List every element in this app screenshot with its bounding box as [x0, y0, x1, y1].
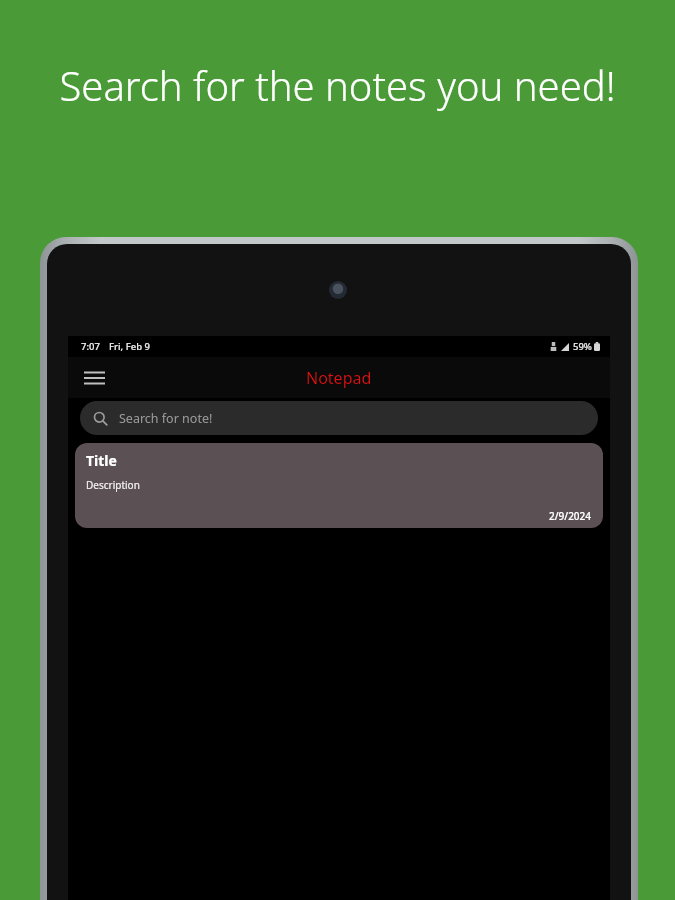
- button[interactable]: Open navigation menu: [79, 363, 109, 393]
- staticText: Description: [86, 478, 140, 492]
- staticText: Search for the notes you need!: [40, 58, 635, 112]
- staticText: 2/9/2024: [549, 509, 592, 523]
- staticText: Notepad: [306, 367, 372, 389]
- staticText: 7:07: [81, 340, 100, 353]
- staticText: 59%: [573, 340, 592, 353]
- staticText: Search for note!: [119, 410, 213, 427]
- button[interactable]: Title: [75, 443, 603, 528]
- staticText: Title: [86, 451, 117, 470]
- staticText: Fri, Feb 9: [109, 340, 150, 353]
- button[interactable]: Search for note!: [80, 401, 598, 435]
